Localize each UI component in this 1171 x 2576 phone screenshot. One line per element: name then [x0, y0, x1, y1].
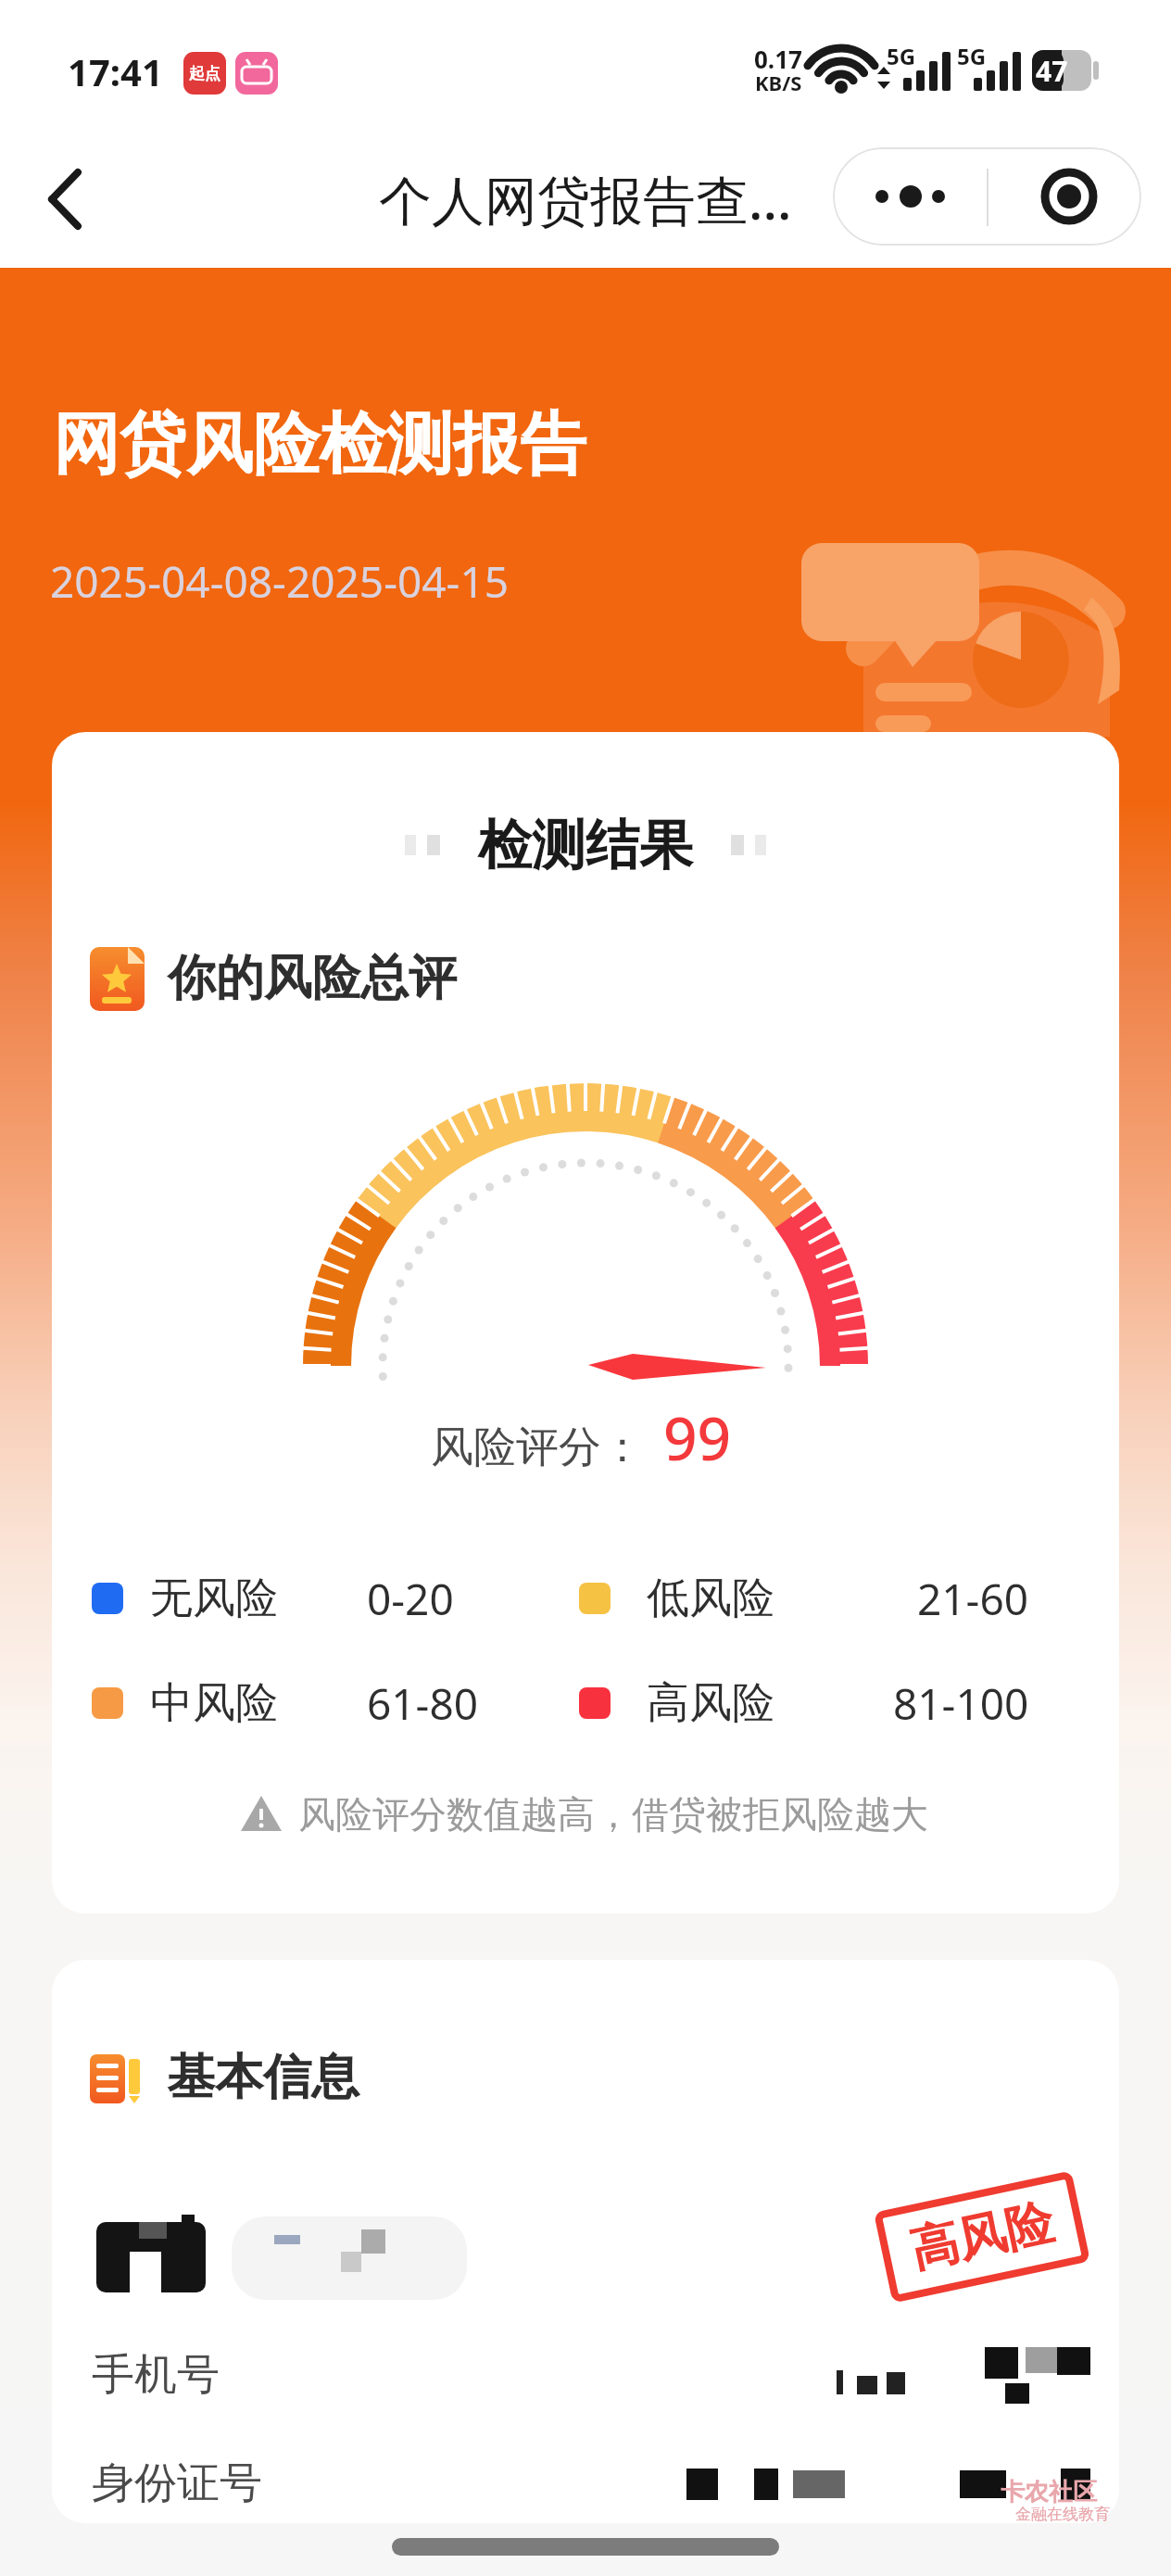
staticText: 手机号	[92, 2348, 220, 2402]
staticText: 0-20	[367, 1570, 454, 1627]
button[interactable]	[987, 147, 1141, 246]
button[interactable]	[28, 153, 111, 246]
staticText: 低风险	[647, 1572, 774, 1625]
staticText: 风险评分数值越高，借贷被拒风险越大	[298, 1791, 928, 1837]
staticText: 0.17	[754, 43, 802, 70]
button[interactable]	[833, 147, 987, 246]
staticText: 检测结果	[478, 812, 693, 879]
staticText: 99	[663, 1397, 732, 1478]
staticText: 网贷风险检测报告	[53, 403, 586, 487]
staticText: 高风险	[647, 1676, 774, 1730]
staticText: 你的风险总评	[168, 948, 457, 1009]
staticText: 起点	[189, 64, 220, 83]
staticText: 47	[1036, 52, 1068, 90]
staticText: 5G	[887, 41, 916, 67]
staticText: 21-60	[917, 1570, 1029, 1627]
staticText: KB/S	[755, 69, 802, 93]
staticText: 81-100	[893, 1674, 1029, 1732]
staticText: 基本信息	[167, 2047, 359, 2108]
staticText: 无风险	[150, 1572, 278, 1625]
staticText: 17:41	[68, 46, 163, 93]
staticText: 5G	[957, 41, 987, 67]
staticText: 身份证号	[92, 2456, 262, 2510]
staticText: 61-80	[367, 1674, 479, 1732]
staticText: 风险评分：	[431, 1421, 644, 1474]
staticText: 中风险	[150, 1676, 278, 1730]
staticText: 卡农社区	[1001, 2477, 1097, 2507]
staticText: 个人网贷报告查...	[379, 163, 792, 235]
staticText: 2025-04-08-2025-04-15	[50, 552, 510, 611]
staticText: 高风险	[905, 2192, 1059, 2282]
staticText: 金融在线教育	[1015, 2505, 1110, 2524]
